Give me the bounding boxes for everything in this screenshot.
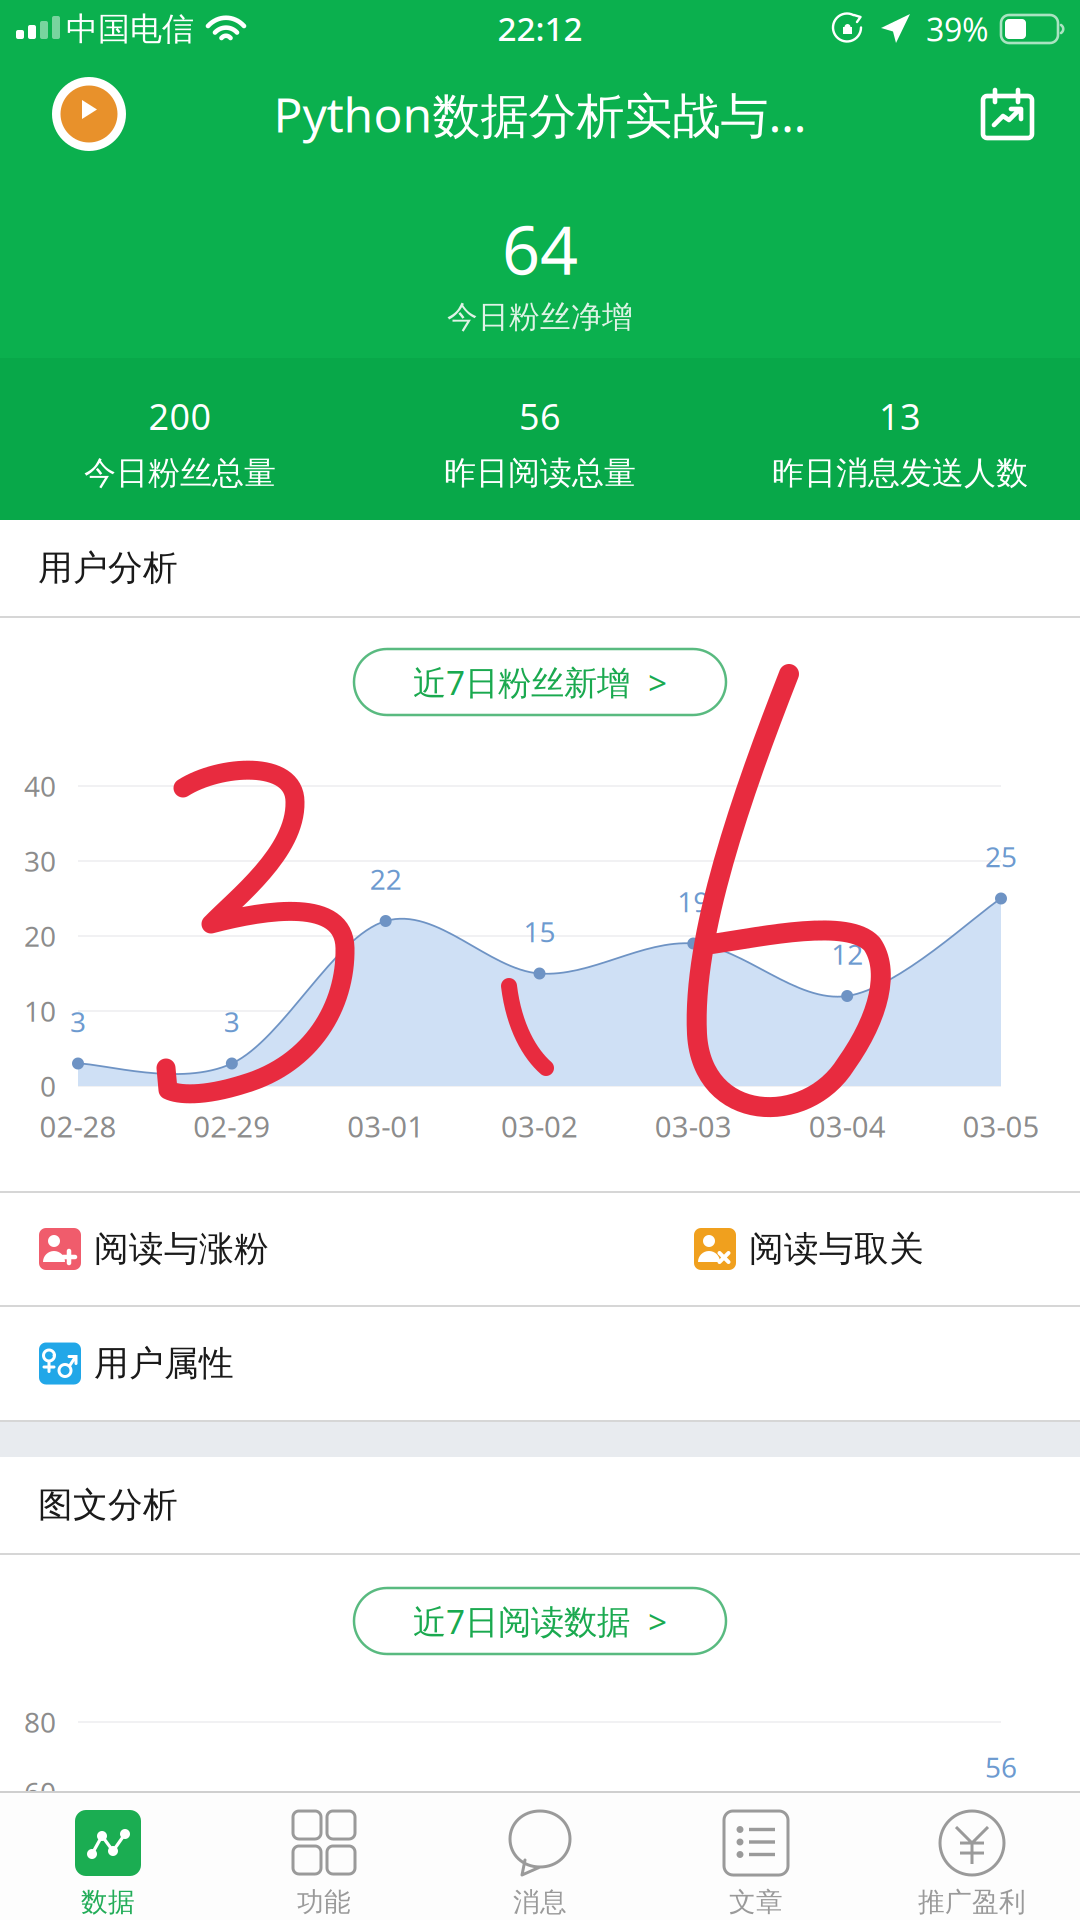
- staticText: 60: [24, 1773, 56, 1811]
- button[interactable]: 阅读与取关: [694, 1193, 1080, 1305]
- staticText: 10: [24, 992, 56, 1030]
- staticText: 近7日阅读数据 >: [413, 1599, 667, 1643]
- staticText: 03-04: [809, 1106, 886, 1145]
- button[interactable]: 文章: [648, 1792, 864, 1920]
- button[interactable]: 推广盈利: [864, 1792, 1080, 1920]
- staticText: 阅读与取关: [749, 1228, 924, 1270]
- button[interactable]: 消息: [432, 1792, 648, 1920]
- staticText: 图文分析: [38, 1484, 178, 1526]
- staticText: 数据: [81, 1886, 135, 1918]
- staticText: 03-01: [347, 1106, 424, 1145]
- staticText: 推广盈利: [918, 1886, 1026, 1918]
- staticText: 40: [24, 767, 56, 805]
- staticText: Python数据分析实战与…: [273, 82, 806, 146]
- staticText: 用户属性: [94, 1342, 234, 1385]
- staticText: 19: [677, 883, 709, 920]
- staticText: 02-28: [39, 1106, 116, 1145]
- button[interactable]: 功能: [216, 1792, 432, 1920]
- staticText: 0: [40, 1067, 56, 1105]
- button[interactable]: 阅读与涨粉: [0, 1193, 694, 1305]
- staticText: 今日粉丝净增: [447, 298, 633, 336]
- staticText: 13: [879, 392, 921, 440]
- staticText: 3: [70, 1003, 86, 1040]
- staticText: 39%: [926, 8, 989, 50]
- staticText: 文章: [729, 1886, 783, 1918]
- staticText: 3: [224, 1003, 240, 1040]
- button[interactable]: 用户属性: [0, 1307, 1080, 1420]
- staticText: 功能: [297, 1886, 351, 1918]
- staticText: 80: [24, 1703, 56, 1741]
- staticText: 02-29: [193, 1106, 270, 1145]
- staticText: 用户分析: [38, 547, 178, 589]
- staticText: 200: [148, 392, 211, 440]
- staticText: 20: [24, 917, 56, 955]
- button[interactable]: Data report: [980, 78, 1036, 150]
- staticText: 56: [519, 392, 561, 440]
- staticText: 64: [502, 205, 578, 293]
- staticText: 消息: [513, 1886, 567, 1918]
- staticText: 15: [523, 913, 555, 950]
- staticText: 03-05: [962, 1106, 1039, 1145]
- staticText: 25: [985, 838, 1017, 875]
- staticText: 今日粉丝总量: [84, 453, 276, 493]
- staticText: 30: [24, 842, 56, 880]
- staticText: 22: [370, 860, 402, 898]
- staticText: 昨日消息发送人数: [772, 453, 1028, 493]
- staticText: 22:12: [497, 6, 582, 50]
- button[interactable]: Account avatar: [48, 73, 130, 155]
- button[interactable]: 近7日阅读数据 >: [354, 1588, 726, 1654]
- staticText: 近7日粉丝新增 >: [413, 660, 667, 704]
- staticText: 中国电信: [66, 9, 194, 49]
- button[interactable]: 近7日粉丝新增 >: [354, 649, 726, 715]
- staticText: 昨日阅读总量: [444, 453, 636, 493]
- staticText: 03-02: [501, 1106, 578, 1145]
- staticText: 03-03: [655, 1106, 732, 1145]
- staticText: 12: [831, 935, 863, 973]
- button[interactable]: 数据: [0, 1792, 216, 1920]
- staticText: 56: [985, 1748, 1017, 1786]
- staticText: 阅读与涨粉: [94, 1228, 269, 1270]
